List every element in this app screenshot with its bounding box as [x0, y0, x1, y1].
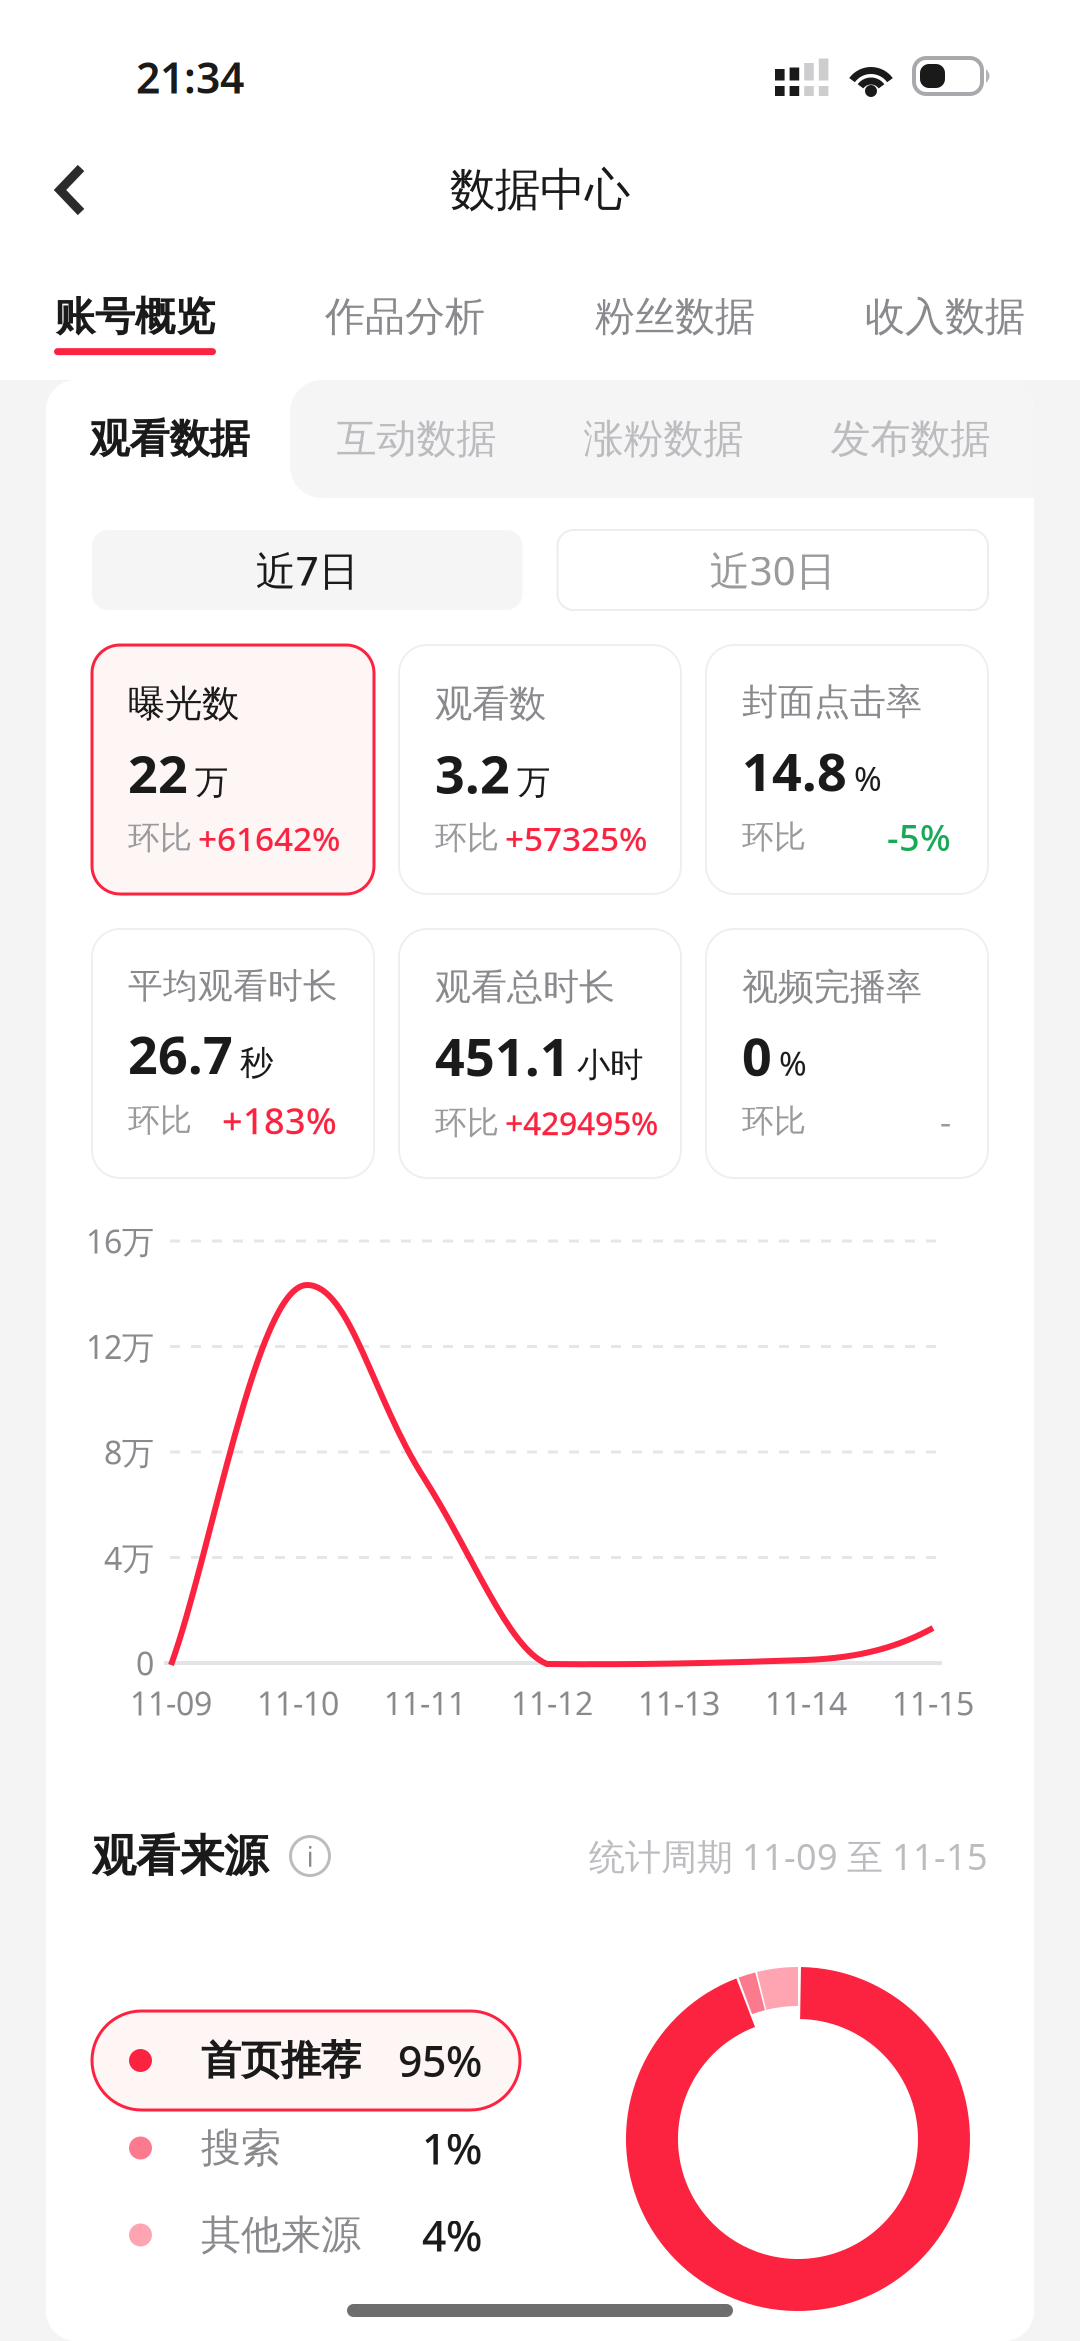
staticText: 环比: [435, 1103, 499, 1142]
staticText: 12万: [86, 1325, 154, 1368]
button[interactable]: 互动数据: [293, 380, 540, 498]
staticText: 21:34: [136, 49, 244, 105]
staticText: 涨粉数据: [583, 414, 743, 463]
staticText: 11-13: [638, 1682, 720, 1724]
staticText: 1%: [422, 2120, 482, 2176]
staticText: 首页推荐: [201, 2036, 361, 2085]
staticText: -5%: [887, 813, 951, 861]
staticText: 互动数据: [336, 414, 496, 463]
button[interactable]: 观看数据: [46, 380, 293, 498]
staticText: 环比: [742, 817, 806, 857]
staticText: %: [779, 1041, 807, 1085]
staticText: 16万: [86, 1220, 154, 1262]
staticText: 11-14: [765, 1682, 847, 1724]
button[interactable]: Back: [25, 150, 117, 230]
button[interactable]: 涨粉数据: [540, 380, 787, 498]
staticText: 秒: [240, 1042, 273, 1083]
staticText: 其他来源: [201, 2210, 361, 2259]
button[interactable]: 视频完播率: [706, 929, 988, 1178]
staticText: 收入数据: [865, 292, 1025, 341]
staticText: 4%: [422, 2207, 482, 2263]
staticText: +429495%: [505, 1101, 658, 1144]
staticText: 11-09: [130, 1682, 212, 1724]
staticText: 环比: [128, 1101, 192, 1140]
staticText: 11-11: [384, 1682, 466, 1724]
staticText: 小时: [577, 1044, 643, 1085]
staticText: 0: [742, 1021, 772, 1090]
button[interactable]: 近7日: [92, 530, 522, 610]
staticText: 11-10: [257, 1682, 339, 1724]
staticText: 近7日: [256, 543, 359, 596]
button[interactable]: 封面点击率: [706, 645, 988, 894]
staticText: +61642%: [198, 816, 340, 860]
staticText: 11-12: [511, 1682, 593, 1724]
staticText: 22: [128, 739, 188, 808]
staticText: 封面点击率: [742, 680, 922, 724]
staticText: 万: [517, 762, 550, 803]
staticText: 95%: [398, 2032, 482, 2089]
button[interactable]: 曝光数: [92, 645, 374, 894]
staticText: 搜索: [201, 2123, 281, 2172]
staticText: +183%: [222, 1096, 337, 1144]
staticText: 曝光数: [128, 681, 239, 727]
button[interactable]: 观看总时长: [399, 929, 681, 1178]
staticText: 3.2: [435, 739, 510, 808]
button[interactable]: 作品分析: [270, 230, 540, 380]
button[interactable]: 粉丝数据: [540, 230, 810, 380]
staticText: 万: [195, 762, 228, 803]
staticText: 0: [136, 1642, 154, 1684]
staticText: 451.1: [435, 1021, 570, 1090]
staticText: 视频完播率: [742, 965, 922, 1009]
staticText: +57325%: [505, 816, 647, 860]
button[interactable]: 搜索: [92, 2110, 520, 2186]
staticText: 观看来源: [92, 1829, 268, 1883]
staticText: 观看总时长: [435, 965, 615, 1009]
staticText: 作品分析: [325, 292, 485, 341]
button[interactable]: 观看数: [399, 645, 681, 894]
staticText: 观看数: [435, 681, 546, 727]
staticText: 8万: [104, 1431, 154, 1473]
button[interactable]: 账号概览: [0, 230, 270, 380]
staticText: 平均观看时长: [128, 965, 338, 1007]
button[interactable]: 平均观看时长: [92, 929, 374, 1178]
staticText: i: [306, 1837, 313, 1875]
staticText: 14.8: [742, 736, 847, 805]
button[interactable]: 发布数据: [787, 380, 1034, 498]
staticText: 26.7: [128, 1019, 233, 1088]
staticText: 近30日: [710, 543, 836, 596]
button[interactable]: 收入数据: [810, 230, 1080, 380]
staticText: 发布数据: [830, 414, 990, 463]
staticText: 4万: [104, 1536, 154, 1579]
staticText: 11-15: [892, 1682, 974, 1724]
staticText: %: [854, 756, 882, 800]
staticText: 数据中心: [450, 162, 630, 218]
staticText: 环比: [742, 1101, 806, 1141]
button[interactable]: 近30日: [557, 530, 988, 610]
staticText: 环比: [128, 818, 192, 858]
button[interactable]: 其他来源: [92, 2197, 520, 2273]
staticText: -: [940, 1098, 951, 1144]
staticText: 统计周期 11-09 至 11-15: [589, 1832, 988, 1880]
button[interactable]: 首页推荐: [92, 2011, 520, 2110]
button[interactable]: About watch sources: [286, 1832, 334, 1880]
staticText: 观看数据: [89, 414, 249, 463]
staticText: 账号概览: [55, 292, 215, 341]
staticText: 粉丝数据: [595, 292, 755, 341]
staticText: 环比: [435, 818, 499, 858]
